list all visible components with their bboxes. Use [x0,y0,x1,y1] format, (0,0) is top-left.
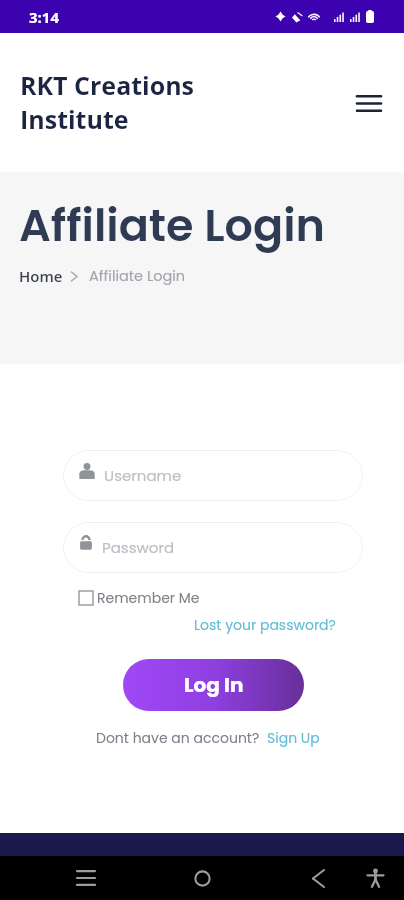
staticText: Affiliate Login [19,194,325,256]
staticText: Log In [184,671,244,699]
staticText: RKT Creations [20,68,195,102]
button[interactable]: Log In [123,659,304,711]
button[interactable]: Remember Me [79,588,200,608]
staticText: 3:14 [29,7,60,27]
staticText: Affiliate Login [89,266,186,286]
staticText: Institute [20,102,129,136]
button[interactable]: Home [180,856,224,900]
button[interactable]: Home [19,264,63,288]
button[interactable]: Lost your password? [194,615,336,635]
staticText: Remember Me [97,588,200,608]
button[interactable]: Accessibility [353,856,397,900]
button[interactable]: Username [63,450,363,501]
button[interactable]: Open navigation menu [349,83,389,123]
button[interactable]: Sign Up [267,728,320,748]
button[interactable]: Password [63,522,363,573]
button[interactable]: Back [296,856,340,900]
staticText: Username [104,465,182,486]
button[interactable]: Recent apps [64,856,108,900]
staticText: Password [102,537,175,558]
staticText: Dont have an account? [96,728,260,748]
